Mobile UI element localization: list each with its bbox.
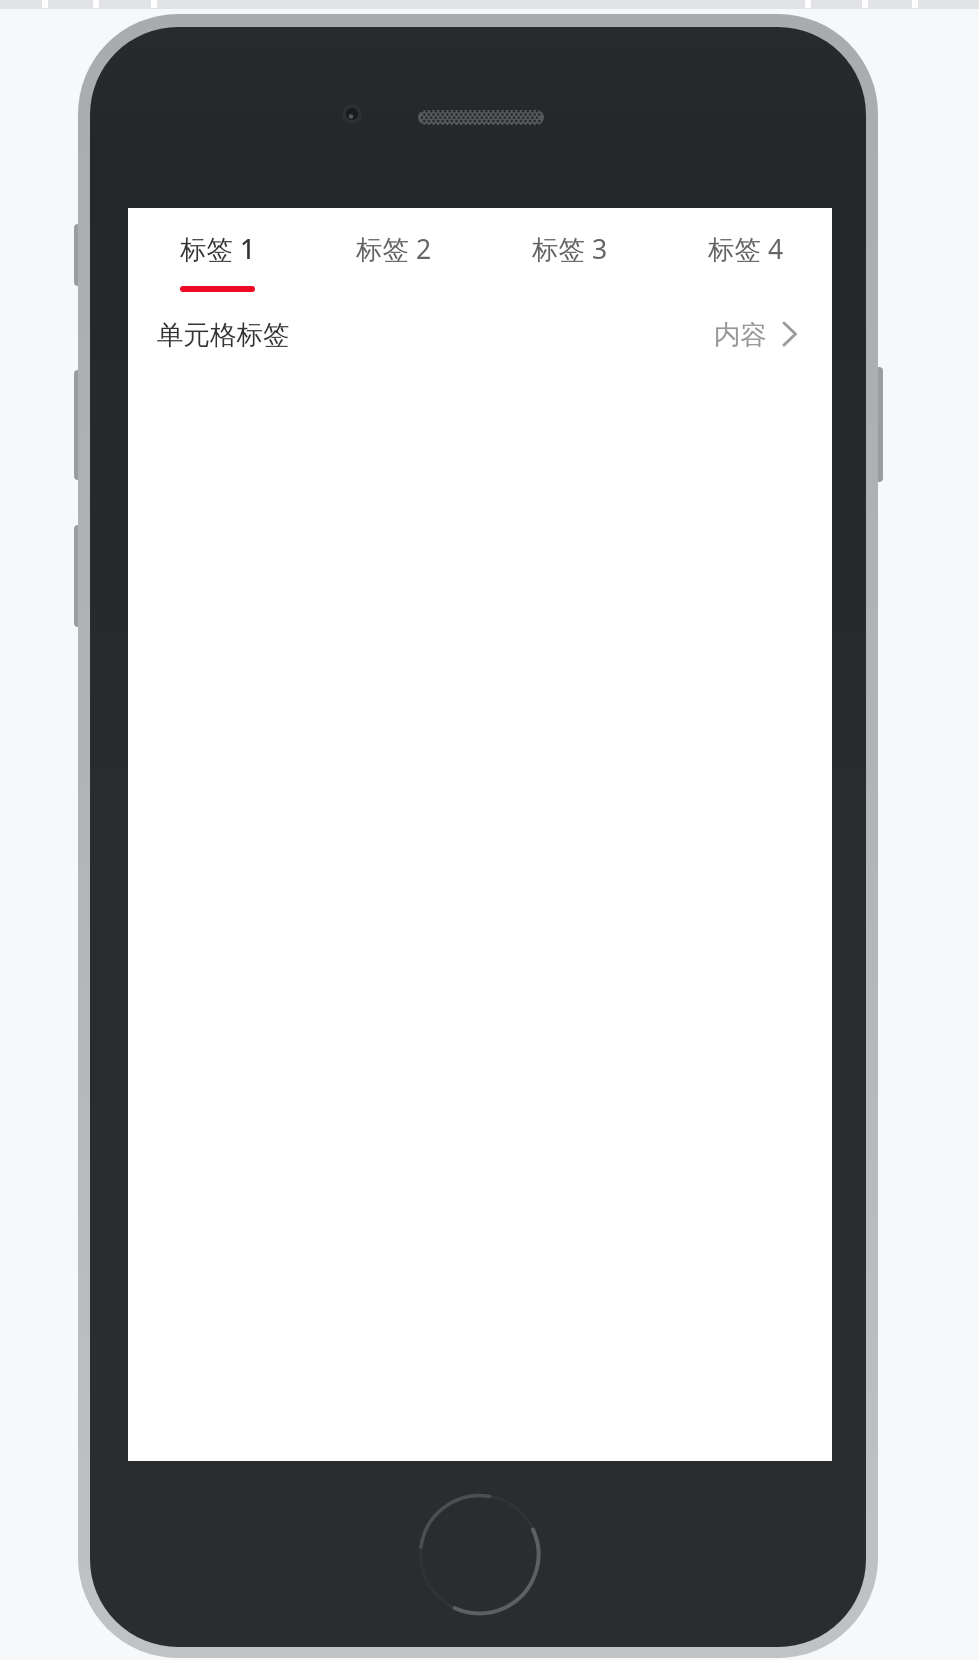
staticText: 标签 1	[180, 231, 256, 267]
staticText: 标签 4	[708, 231, 784, 267]
staticText: 单元格标签	[157, 318, 290, 351]
staticText: 标签 3	[532, 231, 608, 267]
button[interactable]: 标签 2	[306, 208, 482, 289]
staticText: 内容	[714, 318, 767, 351]
button[interactable]: 标签 3	[482, 208, 658, 289]
button[interactable]: 标签 1	[130, 208, 306, 289]
staticText: 标签 2	[356, 231, 432, 267]
button[interactable]: 标签 4	[658, 208, 834, 289]
button[interactable]: 单元格标签	[128, 292, 832, 376]
